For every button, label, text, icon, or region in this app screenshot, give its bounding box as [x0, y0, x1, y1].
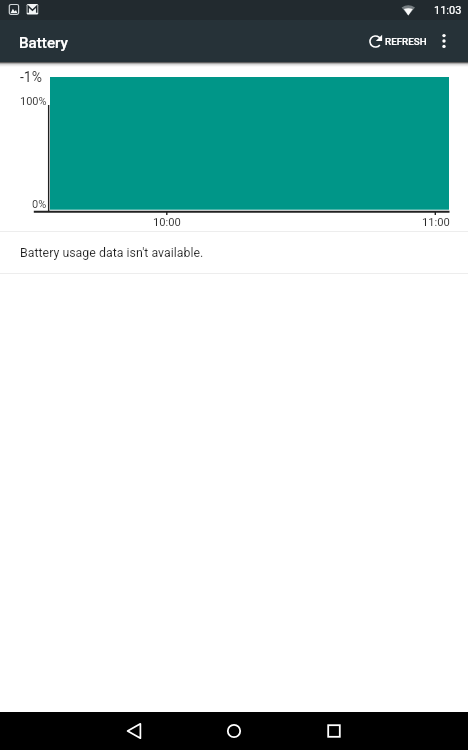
- staticText: 0%: [32, 198, 47, 211]
- staticText: -1%: [20, 69, 42, 85]
- button[interactable]: More options: [428, 20, 460, 62]
- button[interactable]: Home: [210, 712, 258, 750]
- staticText: 100%: [20, 95, 47, 108]
- staticText: 11:03: [434, 4, 462, 17]
- staticText: 11:00: [422, 216, 450, 229]
- staticText: Battery: [19, 34, 68, 52]
- button[interactable]: Back: [110, 712, 158, 750]
- staticText: REFRESH: [385, 36, 427, 47]
- button[interactable]: Recents: [310, 712, 358, 750]
- staticText: 10:00: [153, 216, 181, 229]
- staticText: Battery usage data isn't available.: [20, 245, 204, 260]
- button[interactable]: REFRESH: [362, 20, 433, 62]
